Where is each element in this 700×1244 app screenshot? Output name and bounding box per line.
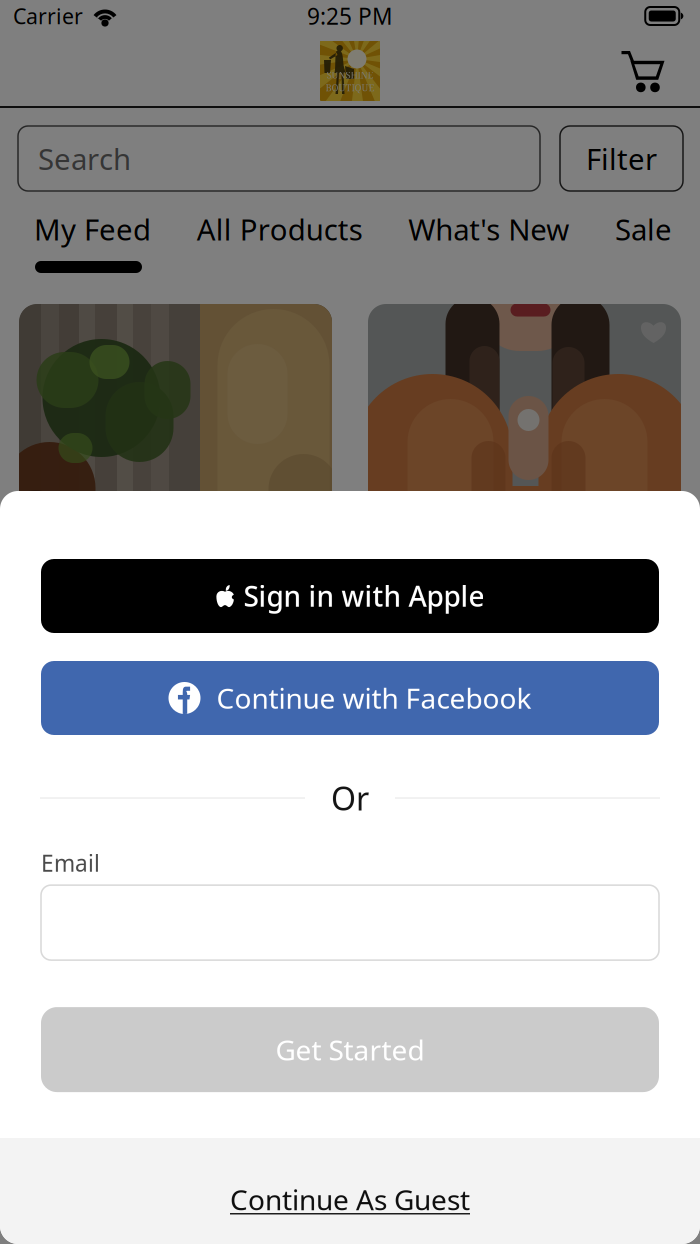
button[interactable]: Sign in with Apple	[41, 559, 659, 633]
button[interactable]: Continue with Facebook	[41, 661, 659, 735]
staticText: Carrier	[13, 2, 83, 30]
button[interactable]: Get Started	[41, 1007, 659, 1092]
button[interactable]: All Products	[197, 209, 363, 248]
staticText: Email	[41, 848, 100, 878]
staticText: Get Started	[275, 1031, 424, 1068]
staticText: My Feed	[34, 209, 151, 248]
staticText: Filter	[586, 139, 657, 178]
button[interactable]: Cart	[620, 49, 666, 93]
button[interactable]: My Feed	[34, 209, 151, 248]
staticText: What's New	[408, 209, 569, 248]
staticText: BOUTIQUE	[325, 81, 374, 94]
staticText: 9:25 PM	[307, 1, 393, 31]
button[interactable]: What's New	[408, 209, 569, 248]
staticText: Continue with Facebook	[216, 679, 531, 717]
button[interactable]: Filter	[560, 126, 683, 191]
staticText: Search	[38, 139, 131, 178]
button[interactable]: Continue As Guest	[0, 1138, 700, 1244]
staticText: SUNSHINE	[326, 69, 373, 81]
staticText: All Products	[197, 209, 363, 248]
button[interactable]: Sale	[615, 209, 672, 248]
staticText: Continue As Guest	[230, 1181, 470, 1218]
staticText: Sale	[615, 209, 672, 248]
staticText: Sign in with Apple	[243, 577, 484, 615]
staticText: Or	[331, 777, 369, 819]
